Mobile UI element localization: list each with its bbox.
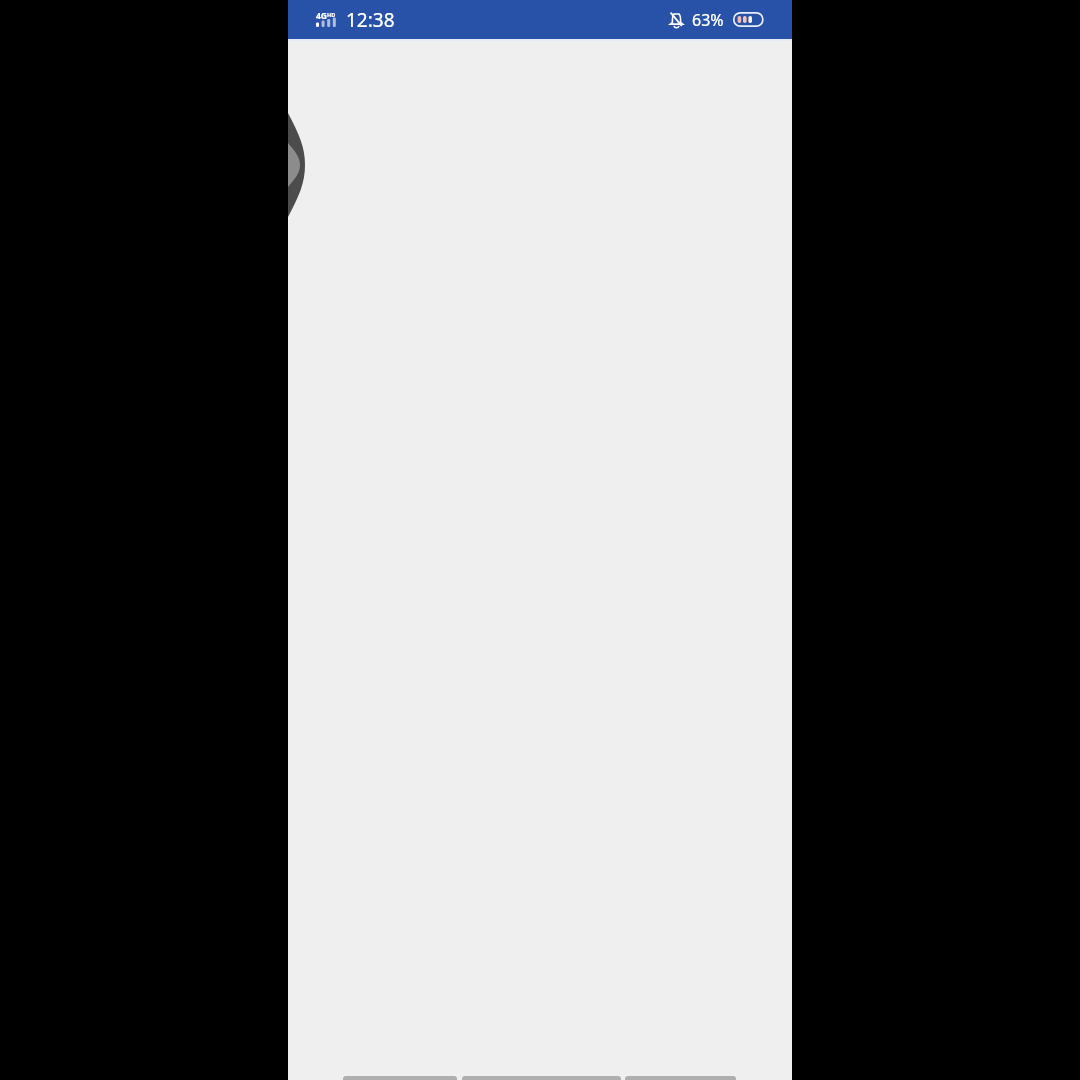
button[interactable]: [625, 1076, 736, 1080]
button[interactable]: [462, 1076, 621, 1080]
staticText: 4Gᴴᴰ: [316, 10, 336, 22]
staticText: 12:38: [346, 7, 395, 33]
button[interactable]: [343, 1076, 457, 1080]
staticText: 63%: [692, 9, 724, 31]
button[interactable]: [288, 113, 308, 217]
